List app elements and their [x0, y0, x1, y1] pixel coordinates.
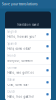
staticText: Hola, como estas? — [7, 47, 30, 50]
button[interactable]: English — [5, 28, 51, 40]
staticText: Dutch — [7, 90, 15, 93]
staticText: Spanish — [7, 42, 17, 45]
staticText: Save your translations — [2, 2, 38, 6]
button[interactable]: Spanish — [5, 40, 51, 52]
staticText: French — [7, 54, 16, 57]
staticText: English — [7, 30, 17, 33]
staticText: Bonjour, comment — [7, 59, 33, 62]
staticText: Hallo, wie geht es — [7, 71, 33, 74]
staticText: Hello, how are you? — [7, 35, 35, 38]
staticText: Hallo, hoe gaat het — [7, 95, 34, 98]
staticText: Italian — [7, 78, 15, 81]
staticText: Translation saved — [17, 23, 39, 26]
button[interactable]: French — [5, 52, 51, 64]
staticText: Ciao, come stai? — [7, 83, 28, 86]
staticText: German — [7, 66, 17, 69]
button[interactable]: Dutch — [5, 88, 51, 100]
button[interactable]: German — [5, 64, 51, 76]
button[interactable]: Italian — [5, 76, 51, 88]
